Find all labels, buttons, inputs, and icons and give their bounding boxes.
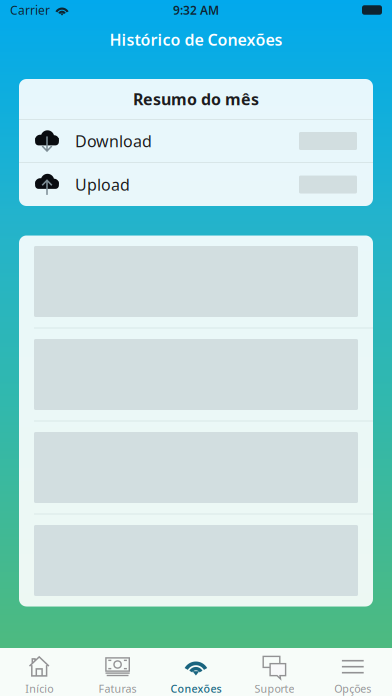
staticText: Histórico de Conexões: [109, 29, 282, 50]
staticText: Conexões: [170, 681, 221, 696]
staticText: Resumo do mês: [133, 88, 259, 110]
staticText: Upload: [75, 174, 130, 195]
button[interactable]: [19, 328, 373, 420]
button[interactable]: Suporte: [235, 648, 314, 696]
staticText: 9:32 AM: [173, 2, 219, 18]
button[interactable]: [19, 514, 373, 606]
button[interactable]: Opções: [314, 648, 392, 696]
staticText: Faturas: [99, 681, 137, 696]
staticText: Opções: [334, 681, 371, 696]
button[interactable]: [19, 235, 373, 327]
staticText: Início: [25, 681, 53, 696]
button[interactable]: Faturas: [78, 648, 157, 696]
button[interactable]: Início: [0, 648, 78, 696]
staticText: Suporte: [254, 681, 294, 696]
button[interactable]: Upload: [19, 163, 373, 206]
button[interactable]: Download: [19, 120, 373, 162]
button[interactable]: Conexões: [157, 648, 235, 696]
button[interactable]: [19, 421, 373, 513]
staticText: Download: [75, 130, 152, 152]
staticText: Carrier: [10, 2, 50, 18]
